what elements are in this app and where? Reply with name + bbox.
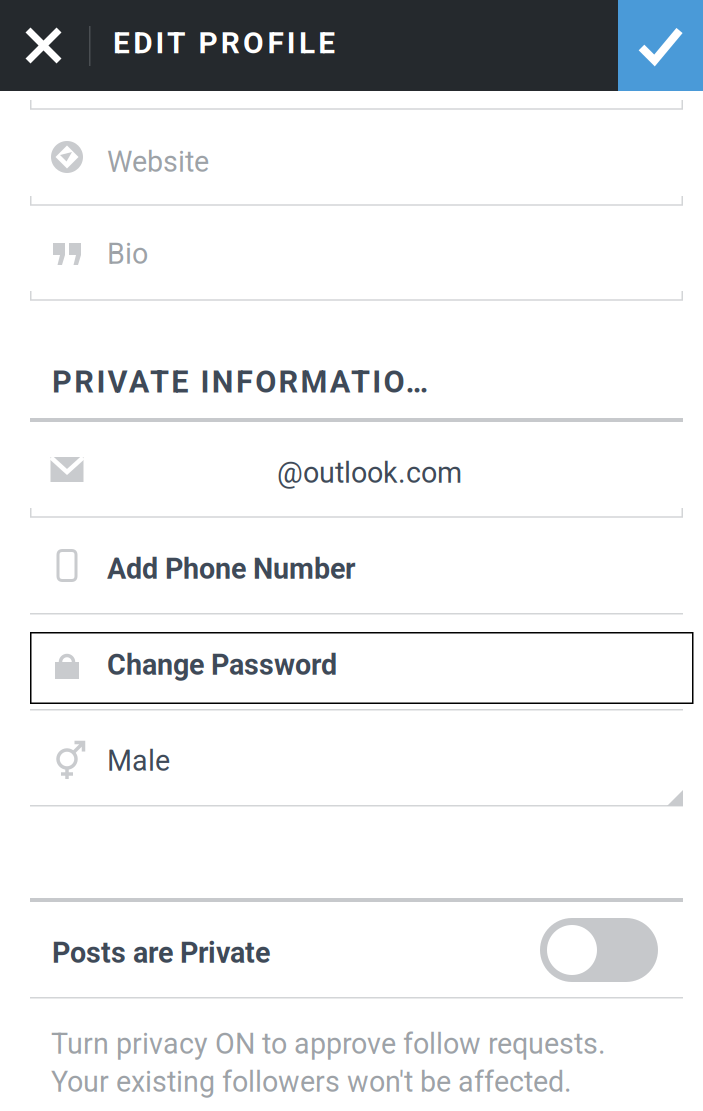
button[interactable]: Close — [0, 0, 87, 91]
staticText: Turn privacy ON to approve follow reques… — [51, 1027, 606, 1061]
staticText: Your existing followers won't be affecte… — [51, 1065, 572, 1099]
button[interactable]: Save — [618, 0, 703, 91]
button[interactable]: Change Password — [0, 0, 703, 1111]
button[interactable]: Add Phone Number — [0, 0, 703, 1111]
button[interactable]: Email address — [0, 0, 703, 1111]
staticText: PRIVATE INFORMATION — [52, 364, 429, 400]
staticText: Bio — [107, 237, 148, 271]
staticText: Posts are Private — [52, 936, 270, 970]
staticText: Add Phone Number — [107, 552, 355, 586]
button[interactable]: Posts are Private — [0, 0, 703, 1111]
staticText: Website — [107, 145, 209, 179]
button[interactable]: Gender — [0, 0, 703, 1111]
button[interactable]: Bio — [0, 0, 703, 1111]
staticText: Male — [107, 744, 170, 778]
staticText: @outlook.com — [277, 456, 462, 490]
button[interactable]: Website — [0, 0, 703, 1111]
staticText: EDIT PROFILE — [113, 25, 335, 60]
staticText: Change Password — [107, 648, 337, 682]
